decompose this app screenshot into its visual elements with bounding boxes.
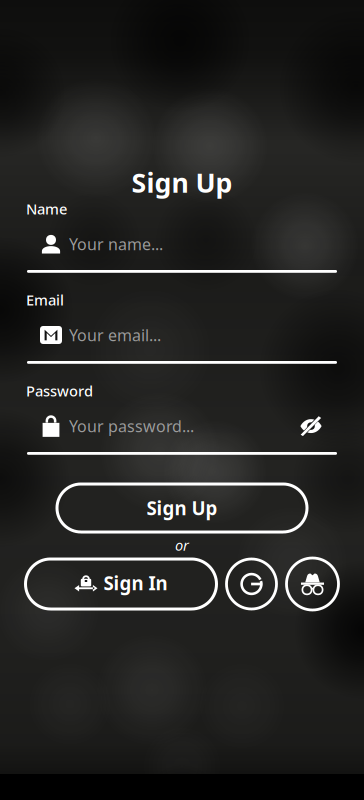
button[interactable]: Sign Up (57, 484, 307, 532)
staticText: Sign Up (146, 496, 217, 520)
button[interactable]: Show password (294, 415, 337, 436)
staticText: Password (26, 381, 93, 400)
staticText: Sign In (103, 571, 167, 595)
staticText: Your name... (69, 233, 163, 255)
staticText: Your email... (69, 324, 161, 346)
button[interactable]: Sign In (25, 559, 216, 609)
staticText: Sign Up (131, 165, 232, 200)
staticText: Email (26, 290, 64, 309)
button[interactable]: Sign in with Google (226, 559, 276, 609)
staticText: Name (26, 199, 67, 218)
staticText: or (175, 535, 189, 555)
button[interactable]: Sign in as guest (286, 558, 338, 610)
staticText: Your password... (69, 415, 194, 437)
